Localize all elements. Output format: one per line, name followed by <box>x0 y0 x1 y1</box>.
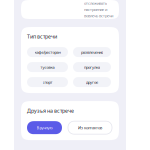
button[interactable]: тусовка <box>27 62 68 72</box>
staticText: отслеживать <box>84 0 107 6</box>
staticText: настроение и <box>84 7 107 12</box>
button[interactable]: другое <box>73 77 111 87</box>
staticText: вовлечь встречи <box>84 13 113 18</box>
staticText: развлечения <box>81 49 103 55</box>
button[interactable]: спорт <box>27 77 68 87</box>
button[interactable]: развлечения <box>73 47 111 57</box>
staticText: кафе/ресторан <box>34 49 60 55</box>
staticText: другое <box>86 79 98 85</box>
button[interactable]: прогулка <box>73 62 111 72</box>
staticText: Из контактов <box>78 125 102 130</box>
button[interactable]: кафе/ресторан <box>27 47 68 57</box>
button[interactable]: Вручную <box>27 121 62 134</box>
staticText: Друзья на встрече <box>27 107 74 114</box>
staticText: Вручную <box>36 125 52 130</box>
staticText: тусовка <box>40 64 54 70</box>
staticText: Тип встречи <box>27 33 57 40</box>
staticText: спорт <box>42 79 52 85</box>
button[interactable]: Из контактов <box>68 121 112 134</box>
staticText: прогулка <box>84 64 100 70</box>
